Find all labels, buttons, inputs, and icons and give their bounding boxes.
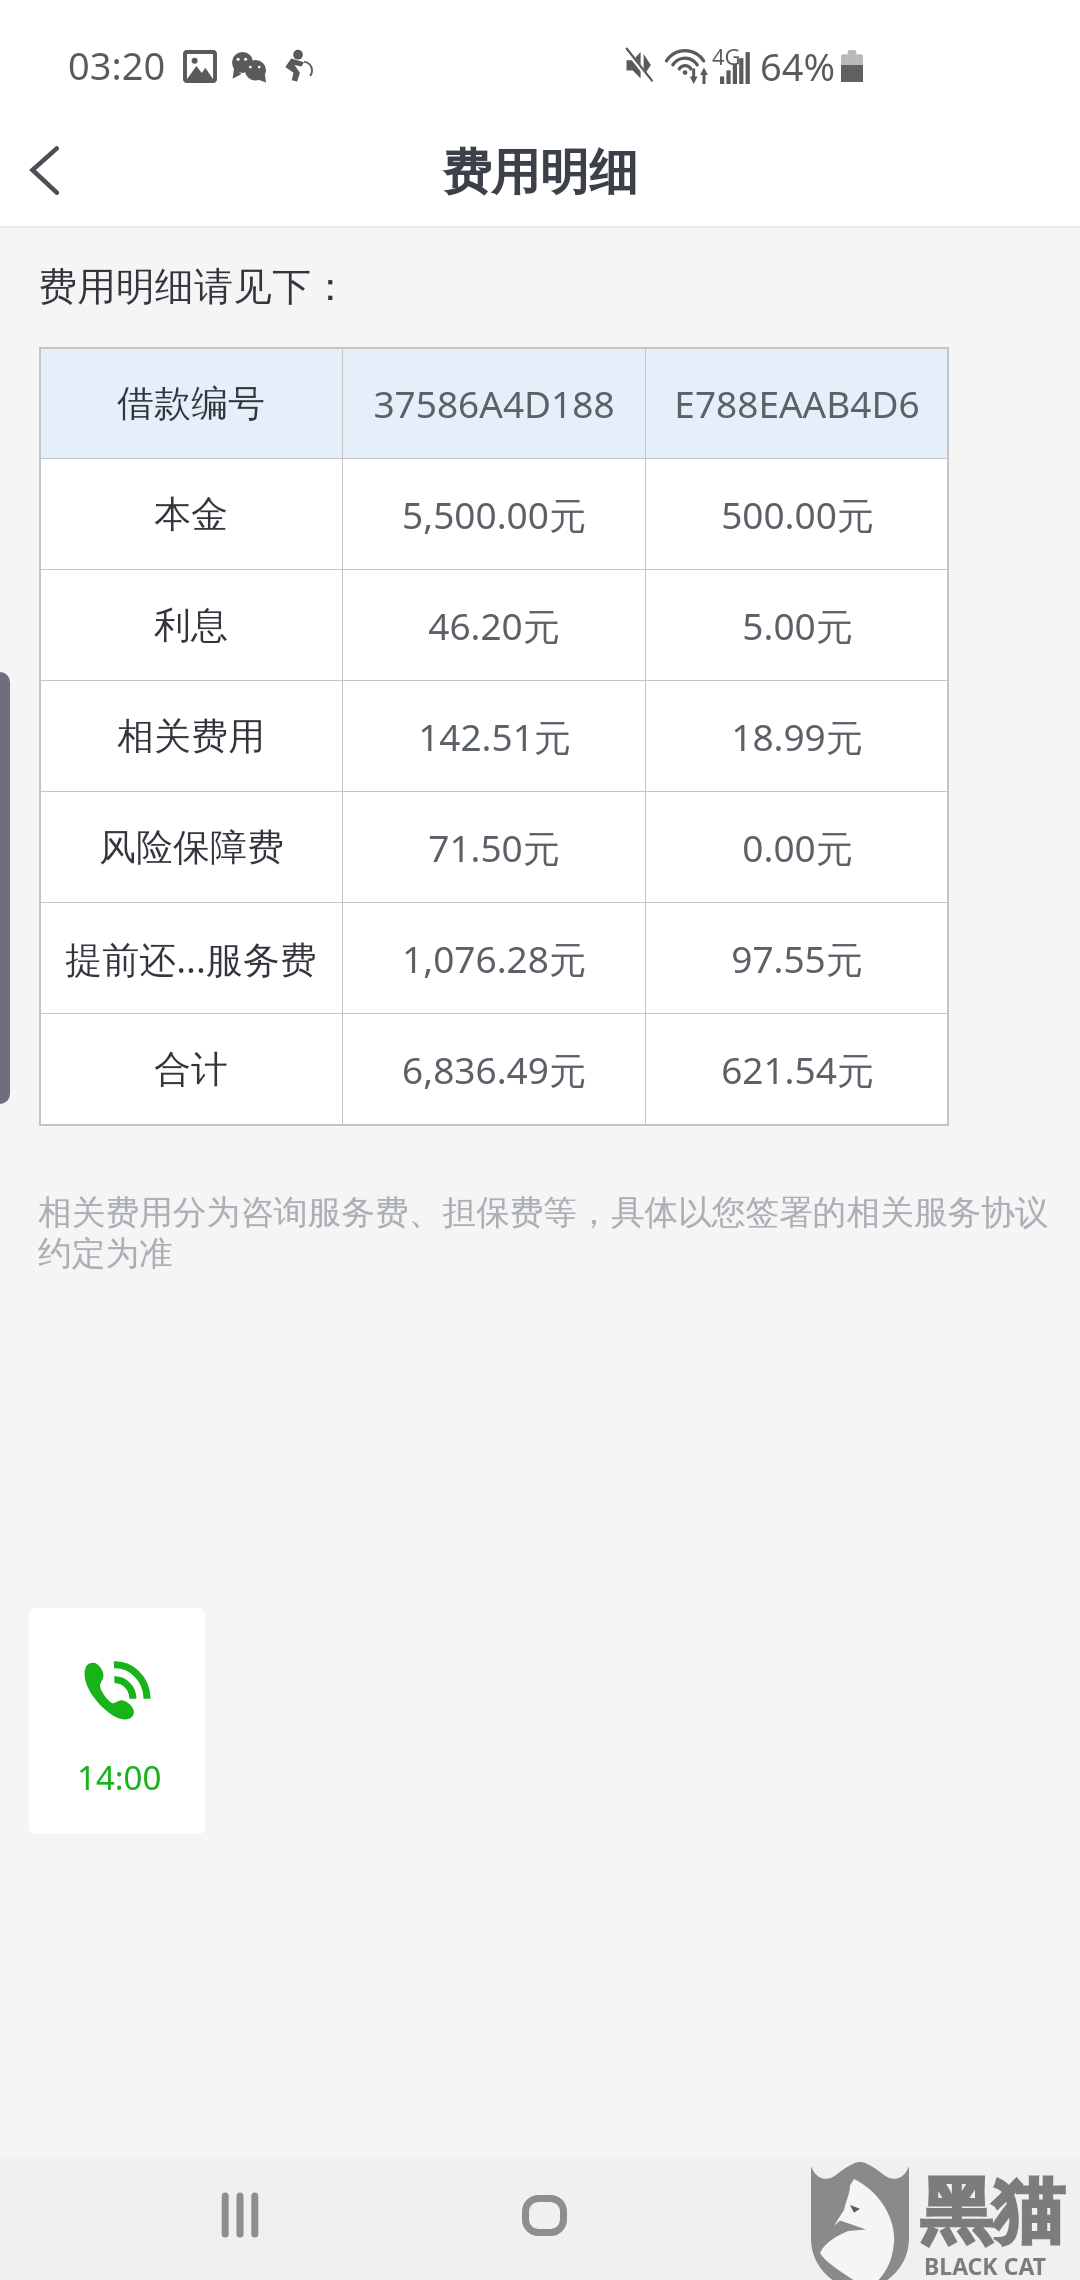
staticText: BLACK CAT xyxy=(924,2250,1046,2280)
staticText: 14:00 xyxy=(77,1755,162,1800)
staticText: 37586A4D188 xyxy=(373,378,615,428)
staticText: 费用明细 xyxy=(442,142,638,204)
staticText: 合计 xyxy=(154,1046,228,1093)
staticText: 提前还...服务费 xyxy=(65,933,317,984)
staticText: 64% xyxy=(760,40,836,92)
staticText: 500.00元 xyxy=(721,489,874,540)
button[interactable]: Recents xyxy=(185,2160,295,2270)
staticText: 借款编号 xyxy=(117,380,265,427)
staticText: 相关费用 xyxy=(117,713,265,760)
staticText: 4G xyxy=(712,41,741,71)
button[interactable]: Home xyxy=(489,2160,599,2270)
staticText: 97.55元 xyxy=(731,933,863,984)
staticText: 费用明细请见下： xyxy=(38,262,350,311)
staticText: 18.99元 xyxy=(731,711,863,762)
staticText: E788EAAB4D6 xyxy=(674,378,920,428)
staticText: 6,836.49元 xyxy=(402,1044,586,1095)
staticText: 5,500.00元 xyxy=(402,489,586,540)
staticText: 0.00元 xyxy=(742,822,853,873)
button[interactable]: Ongoing call 14:00 xyxy=(29,1608,205,1834)
staticText: 黑猫 xyxy=(920,2167,1064,2258)
staticText: 风险保障费 xyxy=(99,824,284,871)
staticText: 5.00元 xyxy=(742,600,853,651)
staticText: 本金 xyxy=(154,491,228,538)
staticText: 03:20 xyxy=(68,39,166,91)
staticText: 46.20元 xyxy=(428,600,560,651)
staticText: 142.51元 xyxy=(418,711,571,762)
button[interactable]: Back xyxy=(0,115,101,225)
staticText: 相关费用分为咨询服务费、担保费等，具体以您签署的相关服务协议约定为准 xyxy=(38,1192,1062,1275)
staticText: 1,076.28元 xyxy=(402,933,586,984)
staticText: 利息 xyxy=(154,602,228,649)
staticText: 71.50元 xyxy=(428,822,560,873)
staticText: 621.54元 xyxy=(721,1044,874,1095)
